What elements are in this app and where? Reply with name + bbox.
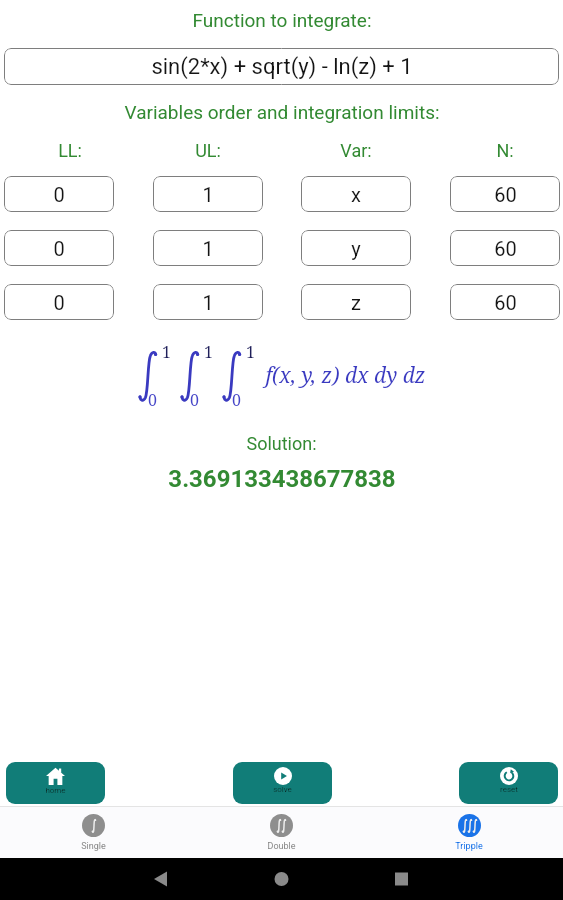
staticText: Variables order and integration limits: (124, 101, 440, 123)
staticText: 3.369133438677838 (168, 465, 396, 493)
button[interactable]: reset (459, 762, 558, 804)
staticText: 0 (232, 389, 241, 411)
button[interactable]: z (301, 284, 411, 320)
button[interactable]: solve (233, 762, 332, 804)
staticText: 60 (494, 183, 517, 206)
button[interactable]: 0 (4, 176, 114, 212)
button[interactable]: 0 (4, 230, 114, 266)
staticText: sin(2*x) + sqrt(y) - ln(z) + 1 (151, 54, 413, 80)
button[interactable]: 0 (4, 284, 114, 320)
staticText: Single (81, 841, 106, 852)
button[interactable]: 60 (450, 230, 560, 266)
staticText: x (351, 183, 361, 206)
button[interactable]: sin(2*x) + sqrt(y) - ln(z) + 1 (4, 48, 559, 85)
button[interactable]: x (301, 176, 411, 212)
staticText: 60 (494, 291, 517, 314)
staticText: solve (273, 785, 292, 794)
button[interactable]: Tripple (375, 806, 563, 858)
staticText: 0 (190, 389, 199, 411)
staticText: 1 (202, 291, 214, 314)
staticText: Var: (340, 140, 372, 161)
staticText: 60 (494, 237, 517, 260)
staticText: reset (500, 785, 518, 794)
staticText: 0 (53, 183, 65, 206)
staticText: N: (496, 140, 514, 161)
button[interactable]: y (301, 230, 411, 266)
button[interactable]: home (6, 762, 105, 804)
staticText: 1 (202, 183, 214, 206)
staticText: 1 (162, 341, 171, 363)
button[interactable]: 60 (450, 284, 560, 320)
button[interactable]: 1 (153, 176, 263, 212)
staticText: y (351, 237, 361, 260)
button[interactable]: 1 (153, 230, 263, 266)
button[interactable]: 1 (153, 284, 263, 320)
staticText: Solution: (246, 433, 317, 454)
staticText: 1 (204, 341, 213, 363)
staticText: LL: (58, 140, 82, 161)
staticText: home (45, 786, 66, 795)
staticText: 0 (53, 237, 65, 260)
button[interactable]: Single (0, 806, 187, 858)
staticText: Function to integrate: (192, 9, 372, 31)
staticText: UL: (195, 140, 221, 161)
button[interactable]: 60 (450, 176, 560, 212)
staticText: 0 (148, 389, 157, 411)
button[interactable]: Double (187, 806, 375, 858)
staticText: Tripple (455, 841, 483, 852)
staticText: 1 (246, 341, 255, 363)
staticText: 1 (202, 237, 214, 260)
staticText: 0 (53, 291, 65, 314)
staticText: Double (267, 841, 296, 852)
staticText: z (351, 291, 361, 314)
staticText: f(x, y, z) dx dy dz (265, 361, 426, 390)
